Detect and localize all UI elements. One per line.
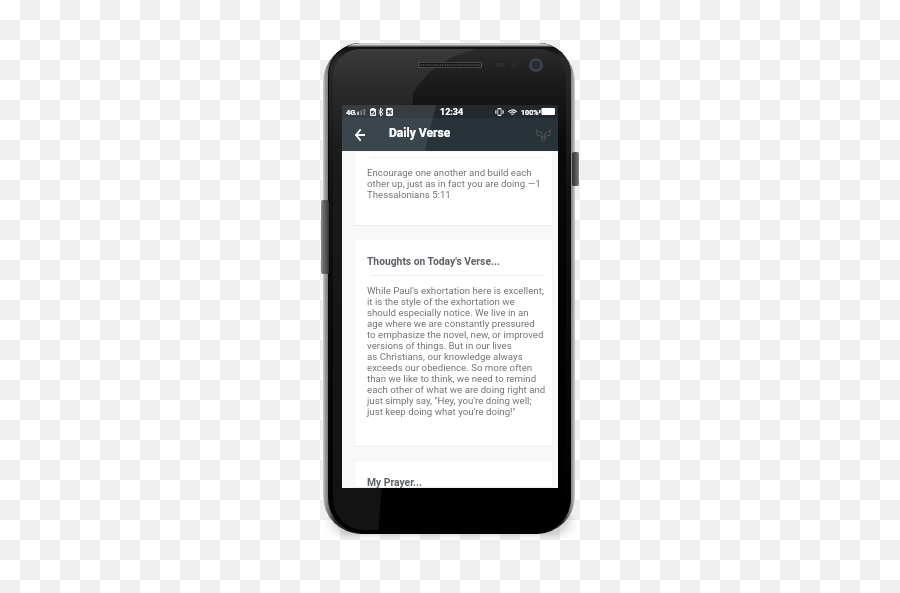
button[interactable]: My Prayer... xyxy=(354,461,553,488)
button[interactable]: Encourage one another and build each oth… xyxy=(354,151,553,226)
staticText: 12:34 xyxy=(440,107,464,118)
staticText: Thoughts on Today's Verse... xyxy=(367,255,500,267)
staticText: Daily Verse xyxy=(389,126,451,140)
button[interactable]: Thoughts on Today's Verse... xyxy=(354,239,553,447)
staticText: 100% xyxy=(521,108,539,116)
button[interactable]: Back xyxy=(347,118,372,151)
staticText: While Paul's exhortation here is excelle… xyxy=(367,285,546,417)
staticText: Encourage one another and build each oth… xyxy=(367,167,541,200)
staticText: My Prayer... xyxy=(367,476,423,488)
button[interactable]: App logo xyxy=(530,118,556,151)
staticText: 4G xyxy=(346,108,356,117)
